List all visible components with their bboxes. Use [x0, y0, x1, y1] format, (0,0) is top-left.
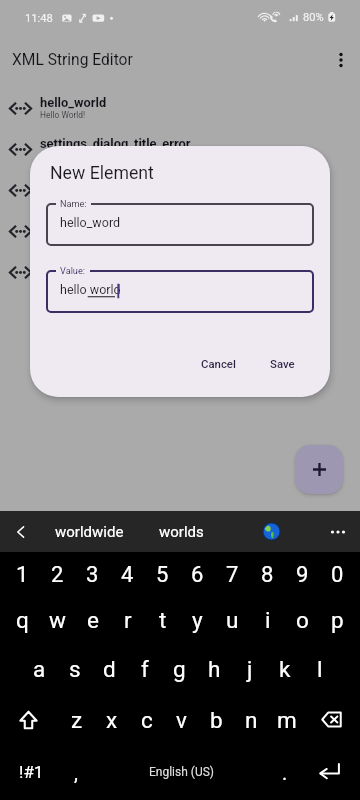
staticText: r	[124, 607, 132, 633]
staticText: 9	[296, 562, 309, 588]
button[interactable]: q	[5, 596, 40, 643]
staticText: d	[103, 656, 116, 682]
button[interactable]: v	[164, 696, 199, 743]
button[interactable]: o	[285, 596, 320, 643]
button[interactable]: t	[145, 596, 180, 643]
staticText: o	[296, 607, 309, 633]
staticText: English (US)	[149, 765, 214, 779]
button[interactable]: l	[302, 645, 337, 692]
button[interactable]: Cancel	[189, 348, 248, 379]
staticText: u	[226, 607, 239, 633]
staticText: m	[277, 707, 297, 733]
button[interactable]: s	[57, 645, 92, 692]
staticText: Save	[270, 357, 295, 370]
button[interactable]: More keyboard options	[322, 511, 354, 552]
button[interactable]: 4	[110, 551, 145, 598]
button[interactable]: !#1	[5, 744, 58, 800]
staticText: 0	[331, 562, 344, 588]
staticText: q	[16, 607, 29, 633]
staticText: worldwide	[55, 523, 124, 541]
button[interactable]: 5	[145, 551, 180, 598]
staticText: hello_world	[40, 95, 107, 110]
button[interactable]	[46, 203, 314, 246]
button[interactable]: j	[232, 645, 267, 692]
button[interactable]: c	[129, 696, 164, 743]
staticText: p	[331, 607, 344, 633]
staticText: 8	[261, 562, 274, 588]
button[interactable]: hello_world	[0, 88, 360, 129]
button[interactable]: i	[250, 596, 285, 643]
button[interactable]: 8	[250, 551, 285, 598]
button[interactable]: n	[234, 696, 269, 743]
button[interactable]: m	[269, 696, 304, 743]
staticText: x	[106, 707, 118, 733]
button[interactable]: b	[199, 696, 234, 743]
button[interactable]: Save	[258, 348, 307, 379]
button[interactable]: w	[40, 596, 75, 643]
button[interactable]: r	[110, 596, 145, 643]
button[interactable]: Enter	[302, 744, 356, 800]
staticText: hello_word	[60, 215, 121, 230]
staticText: 7	[226, 562, 239, 588]
button[interactable]: 3	[75, 551, 110, 598]
button[interactable]: u	[215, 596, 250, 643]
staticText: w	[49, 607, 66, 633]
button[interactable]: a	[22, 645, 57, 692]
button[interactable]: 1	[5, 551, 40, 598]
staticText: New Element	[50, 163, 154, 184]
button[interactable]: action_settings	[0, 211, 360, 252]
button[interactable]: 2	[40, 551, 75, 598]
button[interactable]: Change language	[255, 511, 287, 552]
button[interactable]: y	[180, 596, 215, 643]
button[interactable]: 0	[320, 551, 355, 598]
staticText: XML String Editor	[12, 51, 133, 69]
staticText: k	[279, 656, 291, 682]
button[interactable]: k	[267, 645, 302, 692]
button[interactable]: Previous suggestions	[6, 511, 36, 552]
staticText: v	[176, 707, 187, 733]
button[interactable]: Backspace	[304, 696, 359, 743]
button[interactable]: Add element	[295, 445, 343, 494]
button[interactable]: 9	[285, 551, 320, 598]
staticText: h	[208, 656, 221, 682]
staticText: hello world	[60, 282, 121, 297]
staticText: 6	[191, 562, 204, 588]
button[interactable]: worldwide	[43, 511, 135, 552]
staticText: 11:48	[25, 12, 53, 25]
button[interactable]: e	[75, 596, 110, 643]
button[interactable]: p	[320, 596, 355, 643]
staticText: l	[317, 656, 323, 682]
button[interactable]: English (US)	[93, 744, 269, 800]
button[interactable]: 7	[215, 551, 250, 598]
staticText: b	[210, 707, 223, 733]
staticText: app_name	[40, 177, 100, 192]
button[interactable]: settings_dialog_title_error	[0, 129, 360, 170]
button[interactable]	[46, 270, 314, 313]
button[interactable]: menu_about	[0, 252, 360, 293]
staticText: worlds	[159, 523, 204, 541]
button[interactable]: Shift	[1, 696, 55, 743]
staticText: f	[141, 656, 149, 682]
staticText: Hello World!	[40, 110, 86, 120]
button[interactable]: worlds	[135, 511, 227, 552]
button[interactable]: d	[92, 645, 127, 692]
button[interactable]: z	[59, 696, 94, 743]
staticText: !#1	[19, 762, 44, 782]
button[interactable]: ,	[58, 744, 93, 800]
staticText: s	[69, 656, 81, 682]
staticText: About	[40, 274, 63, 284]
button[interactable]: f	[127, 645, 162, 692]
button[interactable]: app_name	[0, 170, 360, 211]
button[interactable]: More options	[325, 44, 357, 76]
button[interactable]: h	[197, 645, 232, 692]
staticText: y	[192, 607, 203, 633]
button[interactable]: g	[162, 645, 197, 692]
button[interactable]: x	[94, 696, 129, 743]
staticText: e	[87, 607, 99, 633]
staticText: a	[33, 656, 46, 682]
staticText: 5	[156, 562, 169, 588]
button[interactable]: .	[267, 744, 302, 800]
button[interactable]: 6	[180, 551, 215, 598]
staticText: 3	[86, 562, 99, 588]
staticText: 1	[16, 562, 29, 588]
